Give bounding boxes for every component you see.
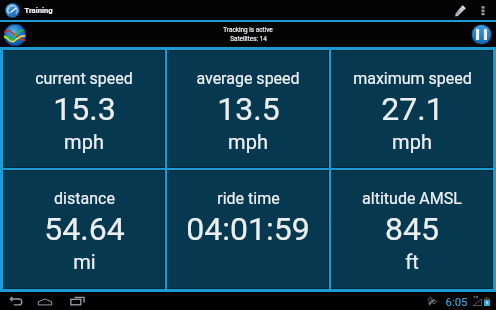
staticText: Tracking is active [223, 26, 273, 34]
staticText: 04:01:59 [186, 210, 310, 248]
staticText: 845 [385, 210, 439, 248]
staticText: 6:05 [445, 295, 468, 308]
staticText: altitude AMSL [362, 189, 462, 208]
button[interactable]: current speed [3, 50, 165, 168]
staticText: mi [73, 250, 96, 273]
staticText: ride time [217, 189, 280, 208]
button[interactable]: maximum speed [331, 50, 493, 168]
staticText: 54.64 [44, 210, 125, 248]
button[interactable]: Back [6, 292, 26, 310]
button[interactable]: ride time [167, 170, 329, 289]
staticText: Satellites: 14 [230, 35, 267, 43]
button[interactable]: altitude AMSL [331, 170, 493, 289]
staticText: distance [54, 189, 115, 208]
staticText: mph [392, 130, 432, 153]
staticText: 27.1 [381, 90, 444, 128]
staticText: 13.5 [217, 90, 280, 128]
button[interactable]: distance [3, 170, 165, 289]
button[interactable]: Recent apps [67, 292, 88, 310]
staticText: ft [405, 250, 419, 273]
staticText: current speed [35, 69, 133, 88]
staticText: mph [64, 130, 104, 153]
button[interactable]: average speed [167, 50, 329, 168]
button[interactable]: More options [474, 0, 492, 20]
button[interactable]: Edit [448, 0, 474, 20]
staticText: maximum speed [353, 69, 472, 88]
staticText: 15.3 [53, 90, 116, 128]
staticText: average speed [196, 69, 300, 88]
button[interactable]: Home [35, 293, 55, 310]
staticText: mph [228, 130, 268, 153]
button[interactable]: Pause tracking [471, 24, 492, 45]
staticText: Training [24, 6, 53, 15]
